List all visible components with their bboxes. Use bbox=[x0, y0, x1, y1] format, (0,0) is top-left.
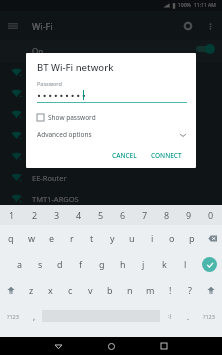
button[interactable]: TMT1-ARGOS bbox=[0, 188, 222, 209]
button[interactable]: q bbox=[0, 225, 21, 251]
button[interactable]: w bbox=[21, 225, 42, 251]
button[interactable]: Show password bbox=[37, 113, 96, 122]
button[interactable]: p bbox=[182, 225, 202, 251]
button[interactable]: , bbox=[26, 303, 42, 329]
staticText: g bbox=[99, 258, 105, 270]
button[interactable]: f bbox=[70, 251, 91, 277]
button[interactable]: b bbox=[100, 277, 120, 303]
button[interactable]: m bbox=[140, 277, 160, 303]
staticText: CANCEL bbox=[112, 151, 137, 160]
button[interactable]: o bbox=[162, 225, 182, 251]
staticText: h bbox=[120, 258, 126, 270]
button[interactable]: x bbox=[41, 277, 60, 303]
button[interactable]: 3 bbox=[46, 205, 68, 225]
button[interactable]: . bbox=[180, 303, 196, 329]
staticText: On bbox=[32, 46, 44, 57]
button[interactable]: Add network bbox=[0, 209, 222, 229]
button[interactable]: Back bbox=[49, 337, 67, 355]
staticText: :) bbox=[168, 312, 172, 320]
button[interactable]: Advanced options bbox=[37, 130, 187, 139]
button[interactable]: i bbox=[142, 225, 162, 251]
button[interactable]: ?123 bbox=[0, 303, 26, 329]
staticText: r bbox=[70, 232, 74, 244]
button[interactable]: 8 bbox=[156, 205, 178, 225]
button[interactable]: d bbox=[50, 251, 70, 277]
staticText: c bbox=[68, 284, 73, 296]
staticText: VM1234567 bbox=[32, 131, 74, 141]
staticText: EE-Router bbox=[32, 173, 67, 183]
button[interactable]: CONNECT bbox=[146, 148, 187, 163]
button[interactable]: k bbox=[154, 251, 175, 277]
button[interactable]: y bbox=[102, 225, 122, 251]
staticText: n bbox=[127, 284, 133, 296]
staticText: . bbox=[187, 311, 190, 322]
staticText: 2 bbox=[32, 209, 38, 221]
button[interactable]: Navigation menu bbox=[0, 13, 26, 39]
button[interactable]: 5 bbox=[90, 205, 112, 225]
staticText: ? bbox=[188, 284, 192, 296]
staticText: v bbox=[88, 284, 93, 296]
button[interactable]: h bbox=[112, 251, 133, 277]
button[interactable]: 4 bbox=[68, 205, 90, 225]
button[interactable]: SKY9A2B bbox=[0, 146, 222, 167]
staticText: CONNECT bbox=[151, 151, 182, 160]
button[interactable]: Emoji bbox=[160, 303, 180, 329]
button[interactable]: z bbox=[22, 277, 41, 303]
button[interactable]: s bbox=[30, 251, 50, 277]
staticText: y bbox=[110, 232, 115, 244]
button[interactable]: On bbox=[0, 40, 222, 62]
button[interactable]: v bbox=[80, 277, 100, 303]
button[interactable]: Shift bbox=[200, 277, 222, 303]
staticText: p bbox=[189, 232, 195, 244]
button[interactable]: BT Wi-Fi bbox=[0, 62, 222, 83]
staticText: TMT1-ARGOS bbox=[32, 194, 79, 204]
button[interactable]: Backspace bbox=[202, 225, 222, 251]
button[interactable]: More options bbox=[200, 16, 220, 36]
button[interactable]: Recent apps bbox=[155, 337, 173, 355]
staticText: l bbox=[184, 258, 187, 270]
button[interactable]: c bbox=[60, 277, 80, 303]
button[interactable]: Settings bbox=[176, 14, 200, 38]
staticText: k bbox=[162, 258, 167, 270]
staticText: t bbox=[90, 232, 94, 244]
button[interactable]: Home bbox=[102, 337, 120, 355]
button[interactable]: 9 bbox=[178, 205, 200, 225]
button[interactable]: ? bbox=[180, 277, 200, 303]
staticText: f bbox=[79, 258, 83, 270]
button[interactable]: ?123 bbox=[196, 303, 222, 329]
button[interactable]: a bbox=[10, 251, 30, 277]
button[interactable]: ! bbox=[160, 277, 180, 303]
staticText: 9 bbox=[186, 209, 192, 221]
button[interactable]: g bbox=[91, 251, 112, 277]
staticText: m bbox=[146, 284, 155, 296]
staticText: 0 bbox=[208, 209, 214, 221]
staticText: 6 bbox=[120, 209, 126, 221]
button[interactable]: CANCEL bbox=[107, 148, 142, 163]
button[interactable]: BT-HUB bbox=[0, 104, 222, 125]
button[interactable]: VM1234567 bbox=[0, 125, 222, 146]
button[interactable]: 1 bbox=[0, 205, 23, 225]
staticText: i bbox=[151, 232, 154, 244]
button[interactable]: Enter bbox=[196, 251, 222, 277]
button[interactable]: 2 bbox=[23, 205, 46, 225]
button[interactable]: EE-Router bbox=[0, 167, 222, 188]
button[interactable]: e bbox=[42, 225, 62, 251]
button[interactable]: u bbox=[122, 225, 142, 251]
staticText: 1 bbox=[9, 209, 15, 221]
button[interactable]: j bbox=[133, 251, 154, 277]
button[interactable]: Shift bbox=[0, 277, 22, 303]
button[interactable]: 6 bbox=[112, 205, 134, 225]
button[interactable]: l bbox=[175, 251, 196, 277]
button[interactable]: 0 bbox=[200, 205, 222, 225]
staticText: 5 bbox=[98, 209, 104, 221]
staticText: ?123 bbox=[7, 313, 19, 320]
button[interactable]: BTWifi-X bbox=[0, 83, 222, 104]
button[interactable]: r bbox=[62, 225, 82, 251]
staticText: w bbox=[28, 232, 36, 244]
button[interactable]: n bbox=[120, 277, 140, 303]
button[interactable]: t bbox=[82, 225, 102, 251]
staticText: Advanced options bbox=[37, 130, 92, 139]
button[interactable]: 7 bbox=[134, 205, 156, 225]
staticText: 7 bbox=[142, 209, 148, 221]
